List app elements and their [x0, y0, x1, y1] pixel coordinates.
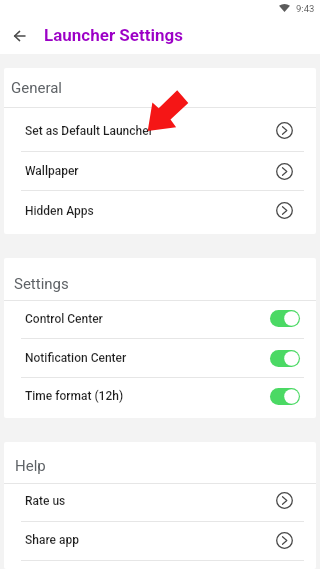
- staticText: Settings: [14, 275, 69, 293]
- staticText: Share app: [25, 533, 276, 547]
- button[interactable]: Time format (12h): [4, 378, 316, 418]
- button[interactable]: Notification Center: [4, 339, 316, 377]
- staticText: Control Center: [25, 312, 270, 326]
- button[interactable]: Wallpaper: [4, 152, 316, 190]
- button[interactable]: Hidden Apps: [4, 191, 316, 234]
- button[interactable]: Share app: [4, 522, 316, 560]
- staticText: Set as Default Launcher: [25, 124, 276, 138]
- staticText: Wallpaper: [25, 164, 276, 178]
- button[interactable]: Control Center: [4, 301, 316, 338]
- button[interactable]: Back: [5, 22, 33, 50]
- staticText: Help: [15, 457, 46, 475]
- staticText: Rate us: [25, 494, 276, 508]
- button[interactable]: Set as Default Launcher: [4, 108, 316, 151]
- staticText: Hidden Apps: [25, 204, 276, 218]
- staticText: 9:43: [296, 3, 315, 14]
- button[interactable]: Rate us: [4, 484, 316, 521]
- staticText: Launcher Settings: [44, 25, 183, 45]
- staticText: General: [11, 79, 63, 97]
- staticText: Time format (12h): [25, 389, 270, 403]
- staticText: Notification Center: [25, 351, 270, 365]
